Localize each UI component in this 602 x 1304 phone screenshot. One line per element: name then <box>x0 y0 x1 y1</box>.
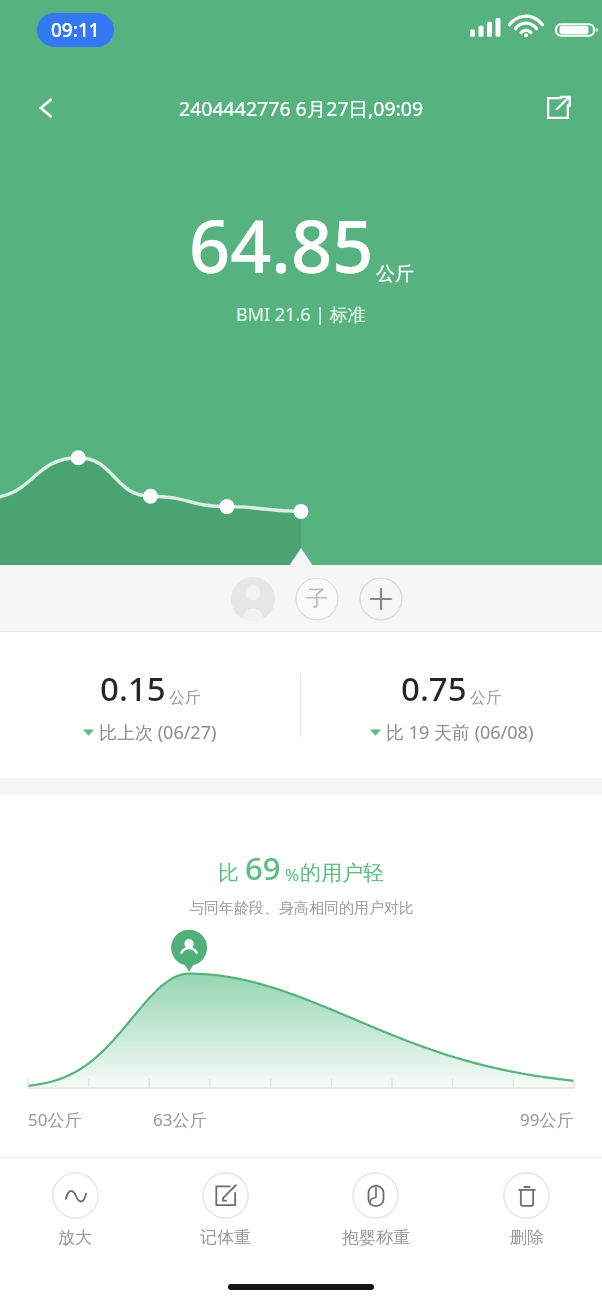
staticText: 69 <box>245 847 281 889</box>
staticText: 99公斤 <box>520 1108 574 1131</box>
staticText: 公斤 <box>470 688 502 708</box>
button[interactable]: 记体重 <box>150 1158 300 1262</box>
button[interactable]: 0.75 <box>301 632 602 778</box>
button[interactable]: Back <box>22 84 70 132</box>
staticText: 64.85 <box>189 196 374 294</box>
staticText: 公斤 <box>169 688 201 708</box>
button[interactable]: 抱婴称重 <box>300 1158 451 1262</box>
staticText: 63公斤 <box>153 1108 207 1131</box>
staticText: 比 19 天前 (06/08) <box>386 720 534 745</box>
staticText: 抱婴称重 <box>342 1227 410 1248</box>
staticText: 0.75 <box>401 666 467 711</box>
staticText: 09:11 <box>51 17 100 43</box>
staticText: 删除 <box>510 1227 544 1248</box>
staticText: 子 <box>306 585 328 613</box>
staticText: % <box>285 863 300 886</box>
button[interactable]: Add user <box>359 577 403 621</box>
staticText: 0.15 <box>100 666 166 711</box>
staticText: 比上次 (06/27) <box>99 720 217 745</box>
staticText: 比 <box>218 860 239 886</box>
staticText: 与同年龄段、身高相同的用户对比 <box>189 899 414 918</box>
staticText: 50公斤 <box>28 1108 82 1131</box>
button[interactable]: 删除 <box>451 1158 602 1262</box>
staticText: 记体重 <box>200 1227 251 1248</box>
button[interactable]: 0.15 <box>0 632 300 778</box>
staticText: BMI 21.6 | 标准 <box>236 302 366 327</box>
staticText: 公斤 <box>376 262 414 286</box>
staticText: 的用户轻 <box>300 860 384 886</box>
button[interactable]: Current user <box>231 577 275 621</box>
button[interactable]: Share <box>536 86 580 130</box>
button[interactable]: 子 <box>295 577 339 621</box>
staticText: 放大 <box>58 1227 92 1248</box>
button[interactable]: 放大 <box>0 1158 150 1262</box>
staticText: 2404442776 6月27日,09:09 <box>179 95 424 122</box>
